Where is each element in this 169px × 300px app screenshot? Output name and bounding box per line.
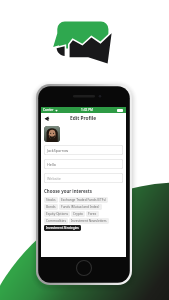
button[interactable]: Crypto [71, 211, 85, 217]
staticText: Bonds [46, 205, 56, 209]
button[interactable]: Forex [86, 211, 99, 217]
staticText: JackSparrow [47, 148, 69, 153]
button[interactable]: Funds (Mutual and Index) [59, 204, 102, 210]
staticText: Edit Profile [70, 115, 97, 122]
button[interactable]: Bonds [44, 204, 58, 210]
button[interactable]: Investment Newsletters [69, 218, 109, 224]
staticText: Carrier [43, 108, 54, 112]
staticText: Investment Strategies [46, 226, 79, 230]
button[interactable]: Commodities [44, 218, 68, 224]
staticText: Commodities [46, 219, 66, 223]
button[interactable]: Change profile photo [44, 126, 60, 142]
button[interactable]: Equity Options [44, 211, 70, 217]
staticText: Website [47, 176, 61, 181]
staticText: Equity Options [46, 212, 68, 216]
staticText: Stocks [46, 198, 56, 202]
staticText: Crypto [73, 212, 83, 216]
staticText: Funds (Mutual and Index) [61, 205, 100, 209]
button[interactable]: Website [44, 173, 123, 183]
staticText: Hello [47, 162, 56, 167]
button[interactable]: Hello [44, 159, 123, 169]
button[interactable]: Exchange Traded Funds (ETFs) [59, 197, 108, 203]
button[interactable]: JackSparrow [44, 145, 123, 155]
staticText: Exchange Traded Funds (ETFs) [61, 198, 106, 202]
staticText: Choose your interests [44, 188, 92, 194]
staticText: 1:32 PM [81, 108, 93, 112]
staticText: Investment Newsletters [71, 219, 107, 223]
button[interactable]: Back [43, 114, 52, 123]
button[interactable]: Stocks [44, 197, 58, 203]
staticText: Forex [88, 212, 97, 216]
button[interactable]: Investment Strategies [44, 225, 81, 231]
